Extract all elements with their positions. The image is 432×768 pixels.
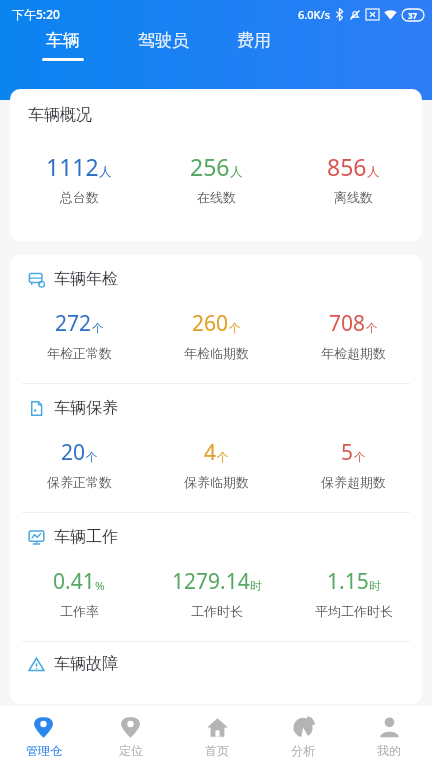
button[interactable]: 分析	[260, 706, 346, 768]
button[interactable]: 5	[285, 436, 422, 492]
button[interactable]: 1279.14	[148, 565, 285, 621]
staticText: 年检临期数	[184, 345, 249, 361]
staticText: 37	[408, 10, 418, 21]
button[interactable]: 定位	[87, 706, 174, 768]
staticText: 驾驶员	[138, 30, 189, 51]
button[interactable]: 4	[148, 436, 285, 492]
button[interactable]: 20	[10, 436, 148, 492]
staticText: 工作时长	[191, 603, 243, 619]
staticText: 5	[341, 438, 354, 467]
staticText: 人	[230, 164, 243, 180]
button[interactable]: 256	[148, 149, 285, 207]
staticText: 车辆工作	[54, 527, 118, 547]
button[interactable]: 708	[285, 307, 422, 363]
staticText: 6.0K/s	[298, 7, 331, 22]
staticText: 个	[86, 450, 98, 465]
button[interactable]: 我的	[346, 706, 432, 768]
staticText: 车辆概况	[28, 105, 92, 125]
staticText: 260	[192, 309, 229, 338]
staticText: 708	[329, 309, 366, 338]
button[interactable]: 首页	[174, 706, 260, 768]
staticText: 人	[367, 164, 380, 180]
staticText: 保养超期数	[321, 474, 386, 490]
staticText: 0.41	[53, 567, 95, 596]
staticText: 时	[369, 579, 381, 594]
staticText: 车辆年检	[54, 269, 118, 289]
staticText: 管理仓	[26, 743, 62, 758]
staticText: 856	[327, 151, 367, 182]
staticText: 下午5:20	[12, 6, 60, 22]
staticText: 时	[250, 579, 262, 594]
staticText: 平均工作时长	[315, 603, 393, 619]
staticText: 20	[61, 438, 86, 467]
staticText: 年检超期数	[321, 345, 386, 361]
button[interactable]: 1.15	[285, 565, 422, 621]
staticText: 总台数	[60, 189, 99, 205]
staticText: 1.15	[327, 567, 369, 596]
button[interactable]: 驾驶员	[134, 28, 193, 60]
button[interactable]: 车辆	[38, 28, 88, 63]
button[interactable]: 费用	[233, 28, 275, 60]
staticText: 个	[92, 321, 104, 336]
staticText: 年检正常数	[47, 345, 112, 361]
staticText: 个	[217, 450, 229, 465]
staticText: 我的	[377, 743, 401, 758]
staticText: 个	[366, 321, 378, 336]
button[interactable]: 272	[10, 307, 148, 363]
staticText: 256	[190, 151, 230, 182]
staticText: 车辆保养	[54, 398, 118, 418]
staticText: %	[95, 578, 105, 594]
staticText: 保养正常数	[47, 474, 112, 490]
button[interactable]: 856	[285, 149, 422, 207]
button[interactable]: 1112	[10, 149, 148, 207]
staticText: 车辆故障	[54, 654, 118, 674]
staticText: 费用	[237, 30, 271, 51]
button[interactable]: 260	[148, 307, 285, 363]
staticText: 定位	[119, 743, 143, 758]
staticText: 人	[99, 164, 112, 180]
staticText: 1279.14	[172, 567, 250, 596]
staticText: 1112	[46, 151, 99, 182]
staticText: 个	[229, 321, 241, 336]
staticText: 离线数	[334, 189, 373, 205]
staticText: 首页	[205, 743, 229, 758]
staticText: 车辆	[46, 30, 80, 51]
staticText: 4	[204, 438, 217, 467]
button[interactable]: 0.41	[10, 565, 148, 621]
staticText: 272	[55, 309, 92, 338]
staticText: 工作率	[60, 603, 99, 619]
staticText: 保养临期数	[184, 474, 249, 490]
staticText: 在线数	[197, 189, 236, 205]
staticText: 个	[354, 450, 366, 465]
staticText: 分析	[291, 743, 315, 758]
button[interactable]: 管理仓	[0, 706, 87, 768]
